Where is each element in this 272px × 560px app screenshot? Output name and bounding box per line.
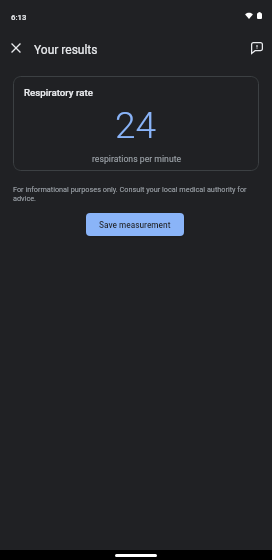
button[interactable]: Send feedback (245, 36, 269, 60)
staticText: For informational purposes only. Consult… (13, 185, 257, 203)
button[interactable]: Close (4, 36, 28, 60)
staticText: 6:13 (11, 13, 27, 22)
button[interactable]: Save measurement (86, 213, 184, 236)
staticText: Your results (34, 43, 98, 57)
staticText: Save measurement (99, 220, 171, 230)
staticText: Respiratory rate (24, 87, 93, 98)
staticText: 24 (115, 104, 157, 147)
staticText: respirations per minute (92, 154, 182, 164)
